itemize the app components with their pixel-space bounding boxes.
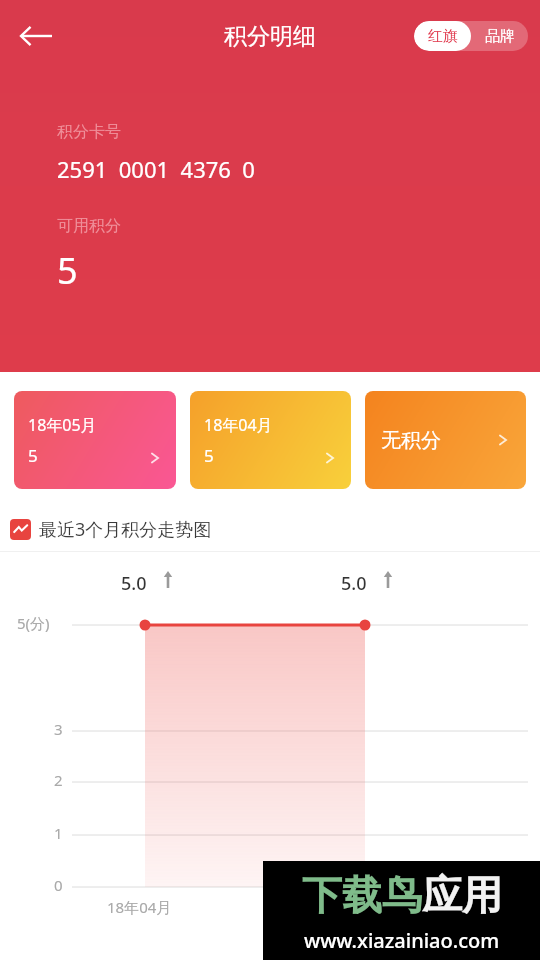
staticText: 5 — [204, 444, 214, 467]
staticText: 5(分) — [17, 613, 50, 633]
staticText: 5 — [28, 444, 38, 467]
staticText: 可用积分 — [57, 216, 121, 236]
staticText: 下载鸟 — [302, 870, 422, 920]
staticText: www.xiazainiao.com — [304, 927, 500, 954]
staticText: 3 — [54, 719, 63, 739]
button[interactable]: 无积分 — [365, 391, 526, 489]
staticText: 5 — [57, 246, 78, 295]
staticText: 0 — [54, 875, 63, 895]
staticText: 5.0 — [341, 571, 367, 596]
staticText: 18年04月 — [107, 897, 172, 917]
staticText: 品牌 — [485, 27, 515, 46]
staticText: 5.0 — [121, 571, 147, 596]
staticText: 积分明细 — [224, 22, 316, 51]
staticText: 应用 — [422, 870, 502, 920]
staticText: 1 — [54, 823, 63, 843]
button[interactable]: 18年05月 — [14, 391, 176, 489]
button[interactable]: Back — [8, 8, 64, 64]
staticText: 红旗 — [428, 27, 458, 46]
staticText: 2 — [54, 770, 63, 790]
button[interactable]: 红旗 — [414, 21, 471, 51]
button[interactable]: 品牌 — [471, 21, 528, 51]
button[interactable]: 18年04月 — [190, 391, 351, 489]
staticText: 18年04月 — [204, 414, 273, 436]
staticText: 无积分 — [381, 428, 441, 453]
staticText: 18年05月 — [28, 414, 97, 436]
staticText: 2591 0001 4376 0 — [57, 154, 255, 184]
staticText: 积分卡号 — [57, 122, 121, 142]
staticText: 最近3个月积分走势图 — [39, 517, 212, 542]
